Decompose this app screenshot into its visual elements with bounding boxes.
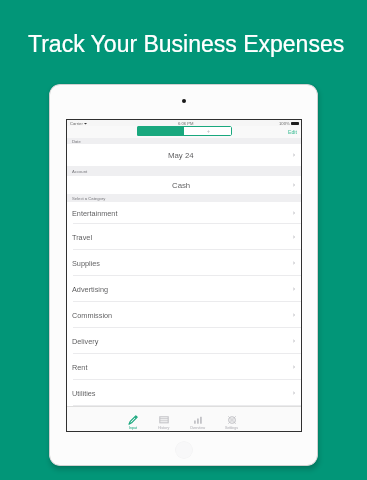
button[interactable]: Cash <box>67 176 301 194</box>
staticText: May 24 <box>168 151 194 160</box>
button[interactable]: Input <box>118 410 148 435</box>
staticText: Edit <box>288 129 297 135</box>
staticText: Supplies <box>72 259 100 267</box>
staticText: Utilities <box>72 389 96 397</box>
staticText: 100% <box>279 121 290 126</box>
staticText: History <box>158 426 170 430</box>
staticText: Cash <box>172 181 191 190</box>
staticText: Commission <box>72 311 113 319</box>
staticText: Select a Category <box>72 196 106 201</box>
button[interactable]: Entertainment <box>67 202 301 224</box>
button[interactable]: Travel <box>67 224 301 250</box>
staticText: Advertising <box>72 285 109 293</box>
staticText: Entertainment <box>72 209 118 217</box>
staticText: Input <box>129 426 137 430</box>
button[interactable]: History <box>148 410 180 435</box>
staticText: 6:06 PM <box>178 121 194 126</box>
button[interactable]: Supplies <box>67 250 301 276</box>
staticText: Date <box>72 139 81 144</box>
button[interactable]: Income <box>184 126 232 136</box>
staticText: Overview <box>190 426 205 430</box>
staticText: + <box>207 128 210 134</box>
button[interactable]: Advertising <box>67 276 301 302</box>
button[interactable]: Utilities <box>67 380 301 406</box>
staticText: Account <box>72 169 88 174</box>
button[interactable]: Delivery <box>67 328 301 354</box>
staticText: Travel <box>72 233 93 241</box>
button[interactable]: Edit <box>288 129 297 135</box>
button[interactable]: Rent <box>67 354 301 380</box>
button[interactable]: Expense <box>137 126 184 136</box>
button[interactable]: Settings <box>215 410 248 435</box>
staticText: Track Your Business Expenses <box>28 31 345 57</box>
button[interactable]: Commission <box>67 302 301 328</box>
button[interactable]: Overview <box>180 410 215 435</box>
staticText: Delivery <box>72 337 99 345</box>
staticText: Settings <box>225 426 238 430</box>
staticText: Rent <box>72 363 88 371</box>
button[interactable]: May 24 <box>67 144 301 166</box>
staticText: Carrier <box>70 121 83 126</box>
